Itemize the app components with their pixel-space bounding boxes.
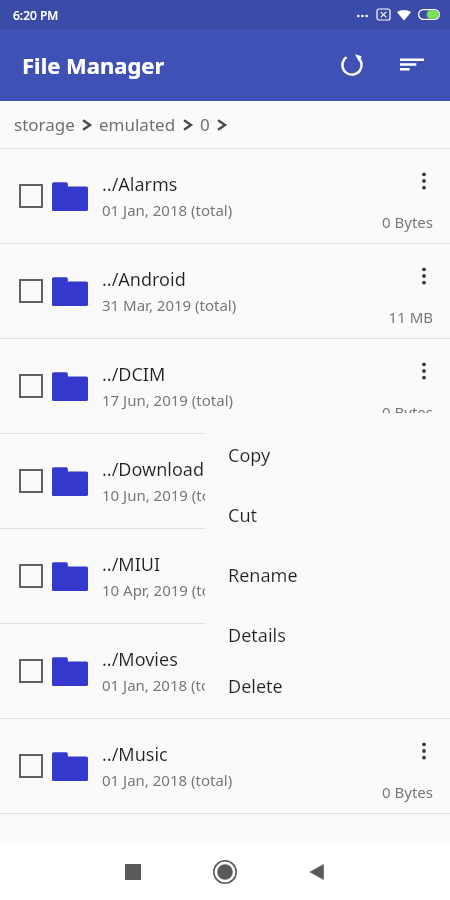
button[interactable]: Select ../DCIM <box>14 369 48 403</box>
staticText: /Notifications <box>102 840 216 865</box>
button[interactable]: More options <box>404 161 444 201</box>
staticText: 11 MB <box>388 307 433 327</box>
button[interactable]: Select ../Download <box>14 464 48 498</box>
button[interactable]: Select ../DCIM <box>0 339 450 433</box>
button[interactable]: Select ../Android <box>0 244 450 338</box>
button[interactable]: Home <box>197 844 253 900</box>
button[interactable]: Select ../Alarms <box>0 149 450 243</box>
staticText: ../Alarms <box>102 172 178 197</box>
button[interactable]: storage <box>14 113 75 136</box>
staticText: Cut <box>228 503 257 528</box>
staticText: Details <box>228 623 286 648</box>
staticText: 0 Bytes <box>382 402 433 422</box>
button[interactable]: Select ../MIUI <box>0 529 450 623</box>
button[interactable]: Recent apps <box>105 844 161 900</box>
staticText: File Manager <box>22 50 165 80</box>
staticText: 01 Jan, 2018 (total) <box>102 200 233 220</box>
staticText: 01 Jan, 2018 (total) <box>102 770 233 790</box>
button[interactable]: Select ../Music <box>0 719 450 813</box>
button[interactable]: More options <box>404 351 444 391</box>
staticText: ../DCIM <box>102 362 166 387</box>
button[interactable]: Sort <box>388 41 436 89</box>
staticText: 17 Jun, 2019 (total) <box>102 390 234 410</box>
button[interactable]: More options <box>404 256 444 296</box>
staticText: Delete <box>228 674 283 699</box>
button[interactable]: Cut <box>205 485 450 545</box>
staticText: Rename <box>228 563 298 588</box>
button[interactable]: 0 <box>200 113 210 136</box>
staticText: 6:20 PM <box>13 7 59 23</box>
button[interactable]: Refresh <box>328 41 376 89</box>
staticText: 0 <box>200 113 210 136</box>
button[interactable]: Select ../Android <box>14 274 48 308</box>
button[interactable]: Rename <box>205 545 450 605</box>
button[interactable]: Select ../Download <box>0 434 450 528</box>
button[interactable]: Select ../Alarms <box>14 179 48 213</box>
button[interactable]: Select ../Movies <box>14 654 48 688</box>
staticText: 10 Apr, 2019 (total) <box>102 580 233 600</box>
button[interactable]: Details <box>205 605 450 665</box>
staticText: ../Movies <box>102 647 178 672</box>
staticText: 0 Bytes <box>382 782 433 802</box>
button[interactable]: Select ../Movies <box>0 624 450 718</box>
staticText: ../Download <box>102 457 204 482</box>
button[interactable]: Delete <box>205 665 450 707</box>
button[interactable]: Select ../MIUI <box>14 559 48 593</box>
button[interactable]: Copy <box>205 425 450 485</box>
staticText: Copy <box>228 443 271 468</box>
staticText: 01 Jan, 2018 (total) <box>102 675 233 695</box>
staticText: 10 Jun, 2019 (total) <box>102 485 234 505</box>
staticText: ../Music <box>102 742 168 767</box>
staticText: 0 Bytes <box>382 212 433 232</box>
button[interactable]: emulated <box>99 113 176 136</box>
staticText: ../MIUI <box>102 552 161 577</box>
button[interactable]: More options <box>404 731 444 771</box>
button[interactable]: Select ../Music <box>14 749 48 783</box>
staticText: 31 Mar, 2019 (total) <box>102 295 237 315</box>
staticText: storage <box>14 113 75 136</box>
staticText: emulated <box>99 113 176 136</box>
button[interactable]: Back <box>289 844 345 900</box>
staticText: ../Android <box>102 267 186 292</box>
